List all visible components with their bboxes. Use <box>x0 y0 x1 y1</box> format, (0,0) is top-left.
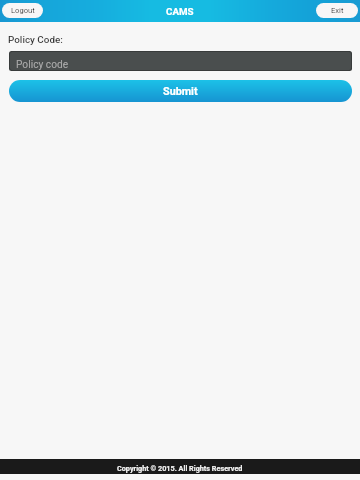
staticText: Policy code <box>16 59 69 70</box>
staticText: Exit <box>331 6 344 15</box>
button[interactable]: Policy code <box>10 52 351 70</box>
button[interactable]: Exit <box>316 3 358 18</box>
staticText: Copyright © 2015. All Rights Reserved <box>117 464 243 472</box>
button[interactable]: Submit <box>9 80 352 102</box>
button[interactable]: Logout <box>2 3 43 18</box>
staticText: Submit <box>163 85 198 98</box>
staticText: Policy Code: <box>8 34 63 46</box>
staticText: Logout <box>11 6 35 15</box>
staticText: CAMS <box>166 6 194 17</box>
